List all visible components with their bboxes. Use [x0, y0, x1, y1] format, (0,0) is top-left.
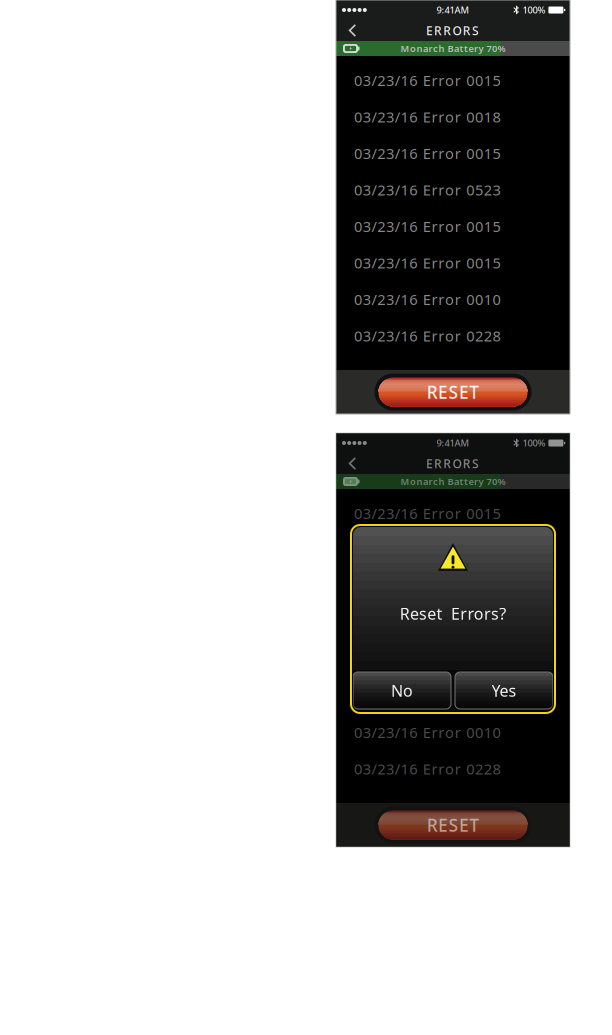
staticText: Monarch Battery 70%	[400, 475, 505, 488]
button[interactable]: 03/23/16 Error 0015	[336, 135, 570, 171]
staticText: RESET	[427, 813, 479, 836]
staticText: 03/23/16 Error 0228	[354, 759, 500, 778]
button[interactable]: Back	[336, 453, 368, 474]
staticText: Monarch Battery 70%	[400, 42, 505, 55]
button[interactable]: 03/23/16 Error 0015	[336, 62, 570, 98]
button[interactable]: 03/23/16 Error 0228	[336, 317, 570, 354]
button[interactable]: No	[353, 672, 451, 709]
staticText: 03/23/16 Error 0015	[354, 576, 500, 596]
staticText: 03/23/16 Error 0018	[354, 107, 500, 126]
button[interactable]: 03/23/16 Error 0010	[336, 281, 570, 317]
staticText: Yes	[491, 680, 516, 701]
staticText: 100%	[522, 437, 545, 449]
button[interactable]: 03/23/16 Error 0523	[336, 604, 570, 641]
button[interactable]: RESET	[336, 370, 570, 414]
staticText: 03/23/16 Error 0015	[354, 686, 500, 705]
button[interactable]: 03/23/16 Error 0015	[336, 208, 570, 244]
button[interactable]: 03/23/16 Error 0523	[336, 171, 570, 208]
button[interactable]: 03/23/16 Error 0015	[336, 495, 570, 531]
button[interactable]: 03/23/16 Error 0018	[336, 531, 570, 568]
staticText: 03/23/16 Error 0228	[354, 326, 500, 345]
staticText: 03/23/16 Error 0523	[354, 180, 500, 199]
staticText: 03/23/16 Error 0015	[354, 253, 500, 272]
staticText: RESET	[427, 380, 479, 403]
staticText: No	[391, 680, 413, 701]
staticText: 03/23/16 Error 0010	[354, 722, 500, 742]
button[interactable]: 03/23/16 Error 0015	[336, 568, 570, 604]
button[interactable]: 03/23/16 Error 0228	[336, 750, 570, 787]
staticText: 03/23/16 Error 0015	[354, 70, 500, 90]
button[interactable]: 03/23/16 Error 0015	[336, 244, 570, 281]
staticText: 100%	[522, 4, 545, 16]
button[interactable]: Back	[336, 20, 368, 41]
staticText: ERRORS	[426, 455, 483, 471]
staticText: 03/23/16 Error 0015	[354, 216, 500, 236]
button[interactable]: 03/23/16 Error 0010	[336, 714, 570, 750]
button[interactable]: 03/23/16 Error 0015	[336, 641, 570, 677]
staticText: 9:41AM	[436, 437, 469, 449]
button[interactable]: RESET	[336, 803, 570, 847]
staticText: 9:41AM	[436, 4, 469, 16]
staticText: ERRORS	[426, 22, 483, 38]
staticText: 03/23/16 Error 0018	[354, 540, 500, 559]
staticText: 03/23/16 Error 0010	[354, 289, 500, 309]
button[interactable]: 03/23/16 Error 0018	[336, 98, 570, 135]
button[interactable]: Yes	[455, 672, 553, 709]
staticText: 03/23/16 Error 0015	[354, 503, 500, 523]
staticText: 03/23/16 Error 0015	[354, 143, 500, 163]
staticText: Reset Errors?	[400, 603, 506, 624]
staticText: 03/23/16 Error 0523	[354, 613, 500, 632]
button[interactable]: 03/23/16 Error 0015	[336, 677, 570, 714]
